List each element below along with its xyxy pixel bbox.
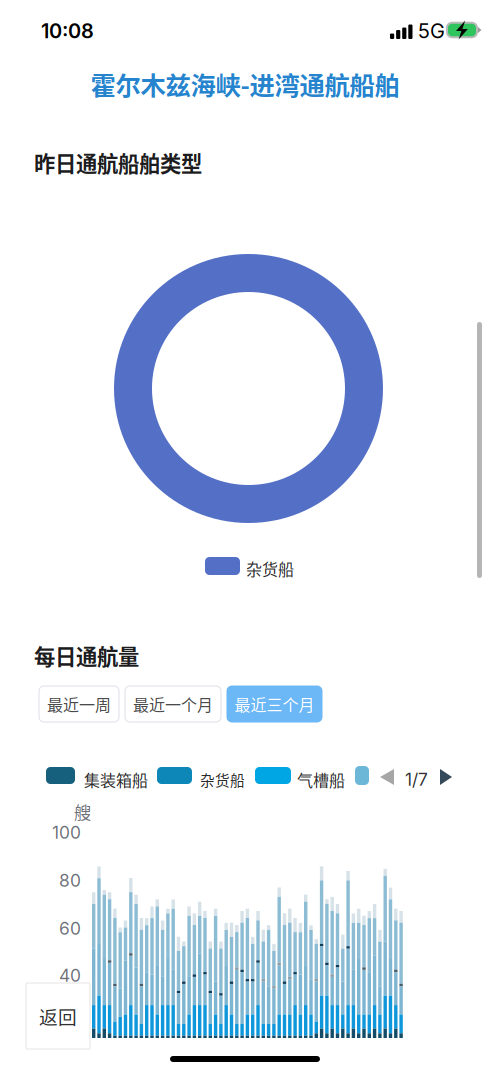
staticText: 80 — [59, 870, 81, 891]
staticText: 昨日通航船舶类型 — [34, 147, 202, 178]
staticText: 杂货船 — [200, 769, 245, 790]
staticText: 艘 — [74, 799, 91, 824]
staticText: 40 — [59, 965, 81, 986]
staticText: 最近三个月 — [234, 692, 314, 716]
staticText: 1/7 — [405, 769, 428, 790]
staticText: 最近一个月 — [133, 692, 213, 716]
staticText: 10:08 — [41, 19, 94, 43]
staticText: 杂货船 — [246, 557, 294, 580]
staticText: 5G — [418, 19, 445, 43]
staticText: 集装箱船 — [84, 768, 148, 791]
staticText: 霍尔木兹海峡-进湾通航船舶 — [90, 66, 399, 102]
staticText: 100 — [52, 822, 81, 843]
button[interactable]: 最近一周 — [39, 686, 119, 722]
button[interactable]: 最近三个月 — [227, 686, 322, 722]
button[interactable]: 下一页 — [440, 769, 452, 785]
staticText: 每日通航量 — [34, 640, 139, 671]
staticText: 返回 — [39, 1002, 77, 1029]
button[interactable]: 最近一个月 — [125, 686, 221, 722]
staticText: 60 — [59, 918, 81, 939]
staticText: 最近一周 — [47, 692, 111, 716]
button[interactable]: 返回 — [26, 983, 90, 1049]
staticText: 气槽船 — [297, 768, 345, 791]
button[interactable]: 上一页 — [380, 769, 394, 785]
